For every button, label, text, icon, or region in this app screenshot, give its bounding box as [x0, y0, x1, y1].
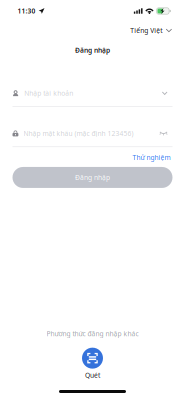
staticText: Quét: [85, 371, 100, 379]
staticText: Đăng nhập: [75, 46, 110, 55]
staticText: Phương thức đăng nhập khác: [46, 329, 138, 338]
button[interactable]: Chọn tài khoản: [159, 89, 172, 98]
button[interactable]: Đăng nhập: [12, 167, 172, 188]
button[interactable]: Nhập tài khoản: [12, 89, 159, 98]
button[interactable]: Nhập mật khẩu (mặc định 123456): [12, 129, 156, 138]
staticText: Tiếng Việt: [130, 26, 162, 35]
staticText: Thử nghiệm: [132, 153, 170, 162]
button[interactable]: Quét: [76, 346, 109, 381]
button[interactable]: Tiếng Việt: [127, 23, 175, 38]
staticText: 11:30: [17, 7, 35, 15]
staticText: Nhập mật khẩu (mặc định 123456): [24, 129, 134, 138]
staticText: Đăng nhập: [75, 173, 110, 182]
staticText: Nhập tài khoản: [24, 89, 73, 98]
button[interactable]: Hiện mật khẩu: [156, 129, 172, 138]
button[interactable]: Thử nghiệm: [131, 152, 172, 163]
